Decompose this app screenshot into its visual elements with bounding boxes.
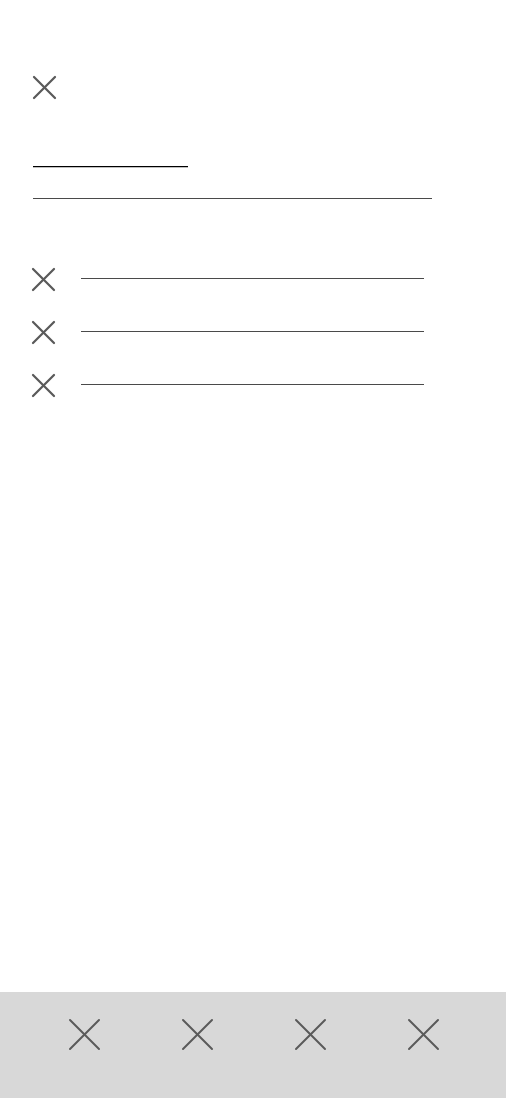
- button[interactable]: List item 2: [0, 306, 506, 359]
- button[interactable]: Profile: [367, 992, 480, 1098]
- button[interactable]: List item 1: [0, 253, 506, 306]
- button[interactable]: Home: [28, 992, 141, 1098]
- button[interactable]: List item 3: [0, 359, 506, 412]
- button[interactable]: Close: [21, 64, 67, 110]
- button[interactable]: Favorites: [254, 992, 367, 1098]
- button[interactable]: Search: [141, 992, 254, 1098]
